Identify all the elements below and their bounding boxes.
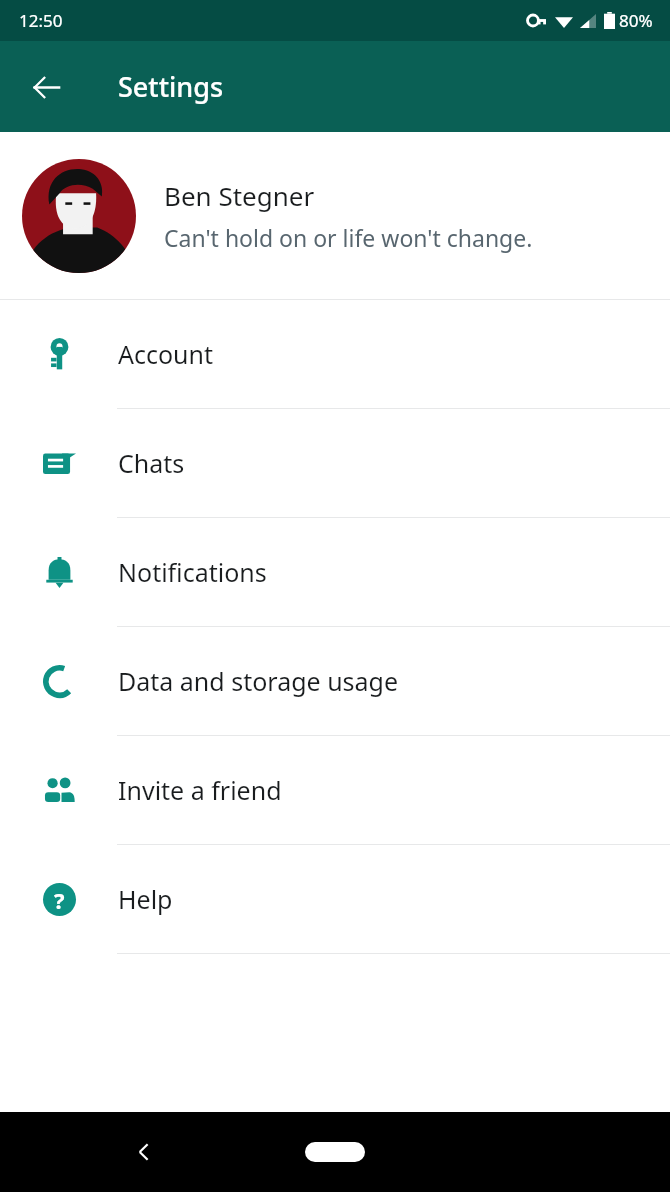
staticText: 80% (619, 9, 653, 32)
staticText: Chats (118, 446, 185, 480)
button[interactable]: Notifications (0, 518, 670, 627)
staticText: 12:50 (19, 9, 63, 32)
button[interactable]: Account (0, 300, 670, 409)
button[interactable]: Invite a friend (0, 736, 670, 845)
staticText: Account (118, 337, 214, 371)
staticText: Can't hold on or life won't change. (164, 222, 533, 253)
button[interactable]: Data and storage usage (0, 627, 670, 736)
staticText: Help (118, 882, 173, 916)
button[interactable]: Back (14, 55, 78, 119)
staticText: Settings (118, 68, 224, 105)
button[interactable]: ? (0, 845, 670, 954)
staticText: Ben Stegner (164, 178, 315, 213)
staticText: ? (54, 885, 65, 915)
button[interactable]: Chats (0, 409, 670, 518)
button[interactable]: Home (300, 1122, 370, 1182)
staticText: Invite a friend (118, 773, 282, 807)
button[interactable]: Ben Stegner (0, 132, 670, 299)
button[interactable]: Back (115, 1122, 175, 1182)
staticText: Notifications (118, 555, 267, 589)
staticText: Data and storage usage (118, 664, 399, 698)
